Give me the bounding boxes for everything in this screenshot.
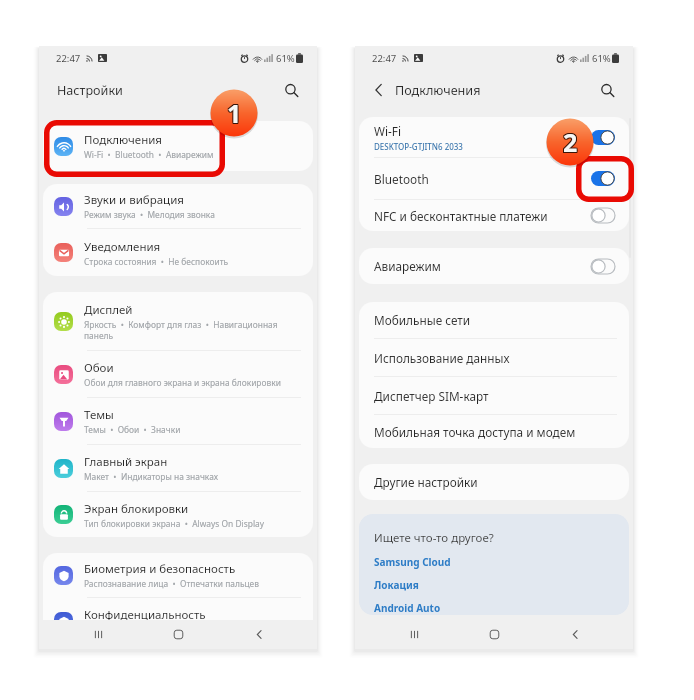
staticText: 2	[563, 124, 578, 158]
staticText: 2	[562, 125, 577, 159]
staticText: 1	[226, 97, 241, 131]
staticText: Авиарежим	[374, 258, 441, 274]
staticText: Мобильные сети	[374, 312, 471, 328]
button[interactable]: Темы	[43, 398, 313, 444]
staticText: Уведомления	[84, 239, 161, 255]
staticText: Другие настройки	[374, 474, 478, 490]
staticText: 1	[226, 95, 241, 129]
staticText: 61%	[276, 52, 295, 65]
button[interactable]: Back	[553, 620, 597, 649]
staticText: 1	[228, 96, 243, 130]
button[interactable]: Обои	[43, 351, 313, 397]
staticText: 2	[563, 125, 578, 159]
button[interactable]: Уведомления	[43, 229, 313, 276]
staticText: Главный экран	[84, 454, 168, 470]
button[interactable]: Конфиденциальность	[43, 598, 313, 644]
button[interactable]: Back	[365, 76, 393, 104]
staticText: Ищете что-то другое?	[374, 530, 494, 546]
staticText: Использование данных	[374, 350, 510, 366]
staticText: Биометрия и безопасность	[84, 561, 236, 577]
staticText: Дисплей	[84, 302, 133, 318]
staticText: Тип блокировки экрана • Always On Displa…	[84, 518, 265, 529]
staticText: Звуки и вибрация	[84, 192, 184, 208]
staticText: 22:47	[56, 52, 81, 65]
button[interactable]: Search	[592, 75, 622, 105]
staticText: 1	[228, 97, 243, 131]
staticText: 1	[228, 95, 243, 129]
staticText: 2	[564, 124, 579, 158]
staticText: Bluetooth	[374, 171, 429, 187]
button[interactable]: Мобильные сети	[374, 302, 615, 338]
staticText: 2	[562, 126, 577, 160]
staticText: 2	[562, 124, 577, 158]
staticText: Wi-Fi	[374, 123, 401, 139]
staticText: Конфиденциальность	[84, 607, 206, 623]
staticText: Обои для главного экрана и экрана блокир…	[84, 377, 281, 388]
staticText: Диспетчер SIM-карт	[374, 388, 489, 404]
button[interactable]: Дисплей	[43, 292, 313, 350]
button[interactable]: Android Auto	[374, 601, 441, 615]
staticText: 1	[227, 96, 242, 130]
button[interactable]: Back	[237, 620, 281, 649]
staticText: 61%	[592, 52, 611, 65]
staticText: Разрешения • Диспетчер разрешений	[84, 624, 244, 635]
button[interactable]: NFC и бесконтактные платежи	[374, 200, 615, 231]
staticText: Подключения	[395, 82, 481, 99]
staticText: Макет • Индикаторы на значках	[84, 471, 218, 482]
button[interactable]: Bluetooth	[374, 158, 615, 199]
staticText: 1	[227, 97, 242, 131]
button[interactable]: Биометрия и безопасность	[43, 553, 313, 597]
staticText: Яркость • Комфорт для глаз • Навигационн…	[84, 319, 285, 341]
staticText: 1	[226, 96, 241, 130]
staticText: 1	[227, 95, 242, 129]
staticText: 2	[564, 125, 579, 159]
staticText: Экран блокировки	[84, 501, 189, 517]
button[interactable]: Home	[472, 620, 516, 649]
staticText: 2	[563, 126, 578, 160]
staticText: 22:47	[372, 52, 397, 65]
staticText: 2	[564, 126, 579, 160]
button[interactable]: Локация	[374, 578, 419, 592]
button[interactable]: Подключения	[43, 121, 313, 171]
staticText: Подключения	[84, 132, 163, 148]
staticText: Настройки	[57, 82, 123, 99]
staticText: Строка состояния • Не беспокоить	[84, 256, 229, 267]
staticText: Мобильная точка доступа и модем	[374, 424, 576, 440]
staticText: Темы	[84, 407, 114, 423]
staticText: Wi-Fi • Bluetooth • Авиарежим	[84, 149, 214, 160]
staticText: Распознавание лица • Отпечатки пальцев	[84, 578, 259, 589]
button[interactable]: Recents	[76, 620, 120, 649]
button[interactable]: Home	[156, 620, 200, 649]
button[interactable]: Wi-Fi	[374, 117, 615, 157]
button[interactable]: Другие настройки	[374, 464, 615, 500]
button[interactable]: Мобильная точка доступа и модем	[374, 415, 615, 448]
button[interactable]: Главный экран	[43, 445, 313, 491]
staticText: NFC и бесконтактные платежи	[374, 208, 548, 224]
button[interactable]: Recents	[392, 620, 436, 649]
staticText: Темы • Обои • Значки	[84, 424, 181, 435]
button[interactable]: Search	[276, 75, 306, 105]
button[interactable]: Звуки и вибрация	[43, 184, 313, 228]
button[interactable]: Диспетчер SIM-карт	[374, 377, 615, 414]
staticText: Режим звука • Мелодия звонка	[84, 209, 215, 220]
button[interactable]: Использование данных	[374, 339, 615, 376]
button[interactable]: Samsung Cloud	[374, 555, 451, 569]
staticText: Обои	[84, 360, 114, 376]
button[interactable]: Экран блокировки	[43, 492, 313, 537]
button[interactable]: Авиарежим	[374, 248, 615, 284]
staticText: DESKTOP-GTJITN6 2033	[374, 141, 463, 152]
